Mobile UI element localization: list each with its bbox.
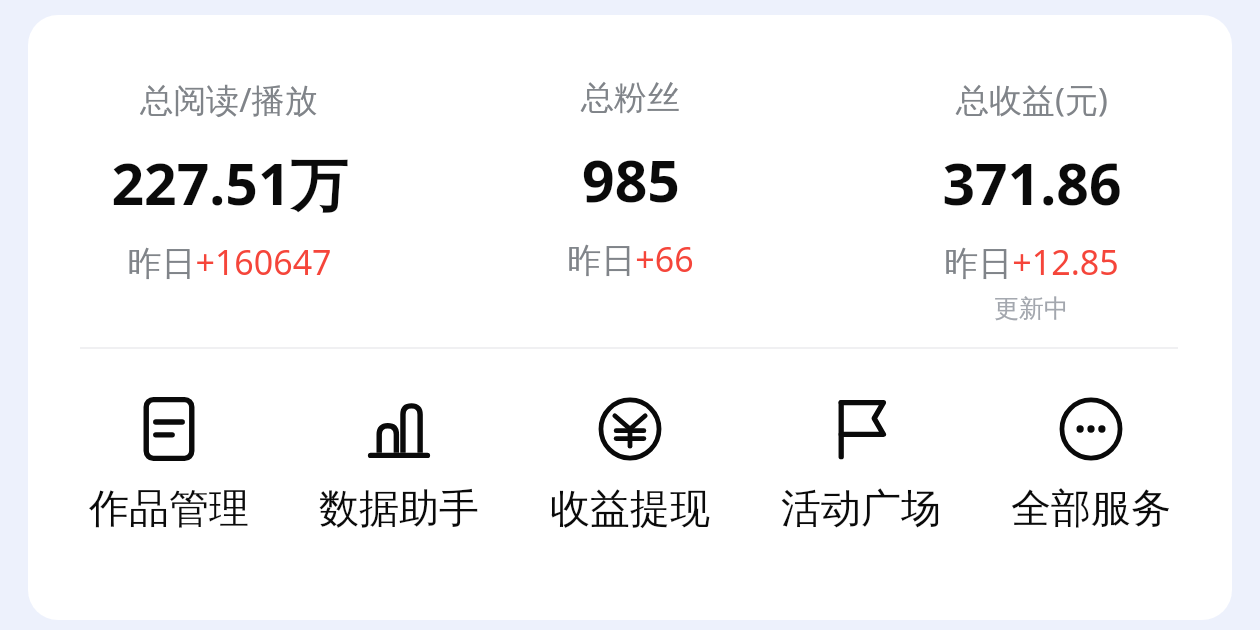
staticText: 总阅读/播放 <box>140 77 318 122</box>
staticText: 作品管理 <box>89 483 249 533</box>
staticText: 371.86 <box>942 144 1122 222</box>
button[interactable]: 总阅读/播放 <box>28 15 430 347</box>
staticText: 227.51万 <box>111 144 348 222</box>
button[interactable]: 总粉丝 <box>430 15 831 347</box>
button[interactable]: 收益提现 <box>540 396 720 533</box>
button[interactable]: 活动广场 <box>771 396 951 533</box>
staticText: 总收益(元) <box>956 77 1108 122</box>
staticText: 数据助手 <box>319 483 479 533</box>
staticText: 全部服务 <box>1011 483 1171 533</box>
button[interactable]: 全部服务 <box>1001 396 1181 533</box>
staticText: 收益提现 <box>550 483 710 533</box>
staticText: 总粉丝 <box>581 77 680 119</box>
staticText: 昨日+160647 <box>127 239 332 285</box>
staticText: 昨日+66 <box>567 236 694 282</box>
staticText: 昨日+12.85 <box>944 239 1119 285</box>
button[interactable]: 总收益(元) <box>831 15 1232 347</box>
staticText: 更新中 <box>994 293 1069 324</box>
button[interactable]: 数据助手 <box>309 396 489 533</box>
button[interactable]: 作品管理 <box>79 396 259 533</box>
staticText: 985 <box>582 141 680 219</box>
staticText: 活动广场 <box>781 483 941 533</box>
